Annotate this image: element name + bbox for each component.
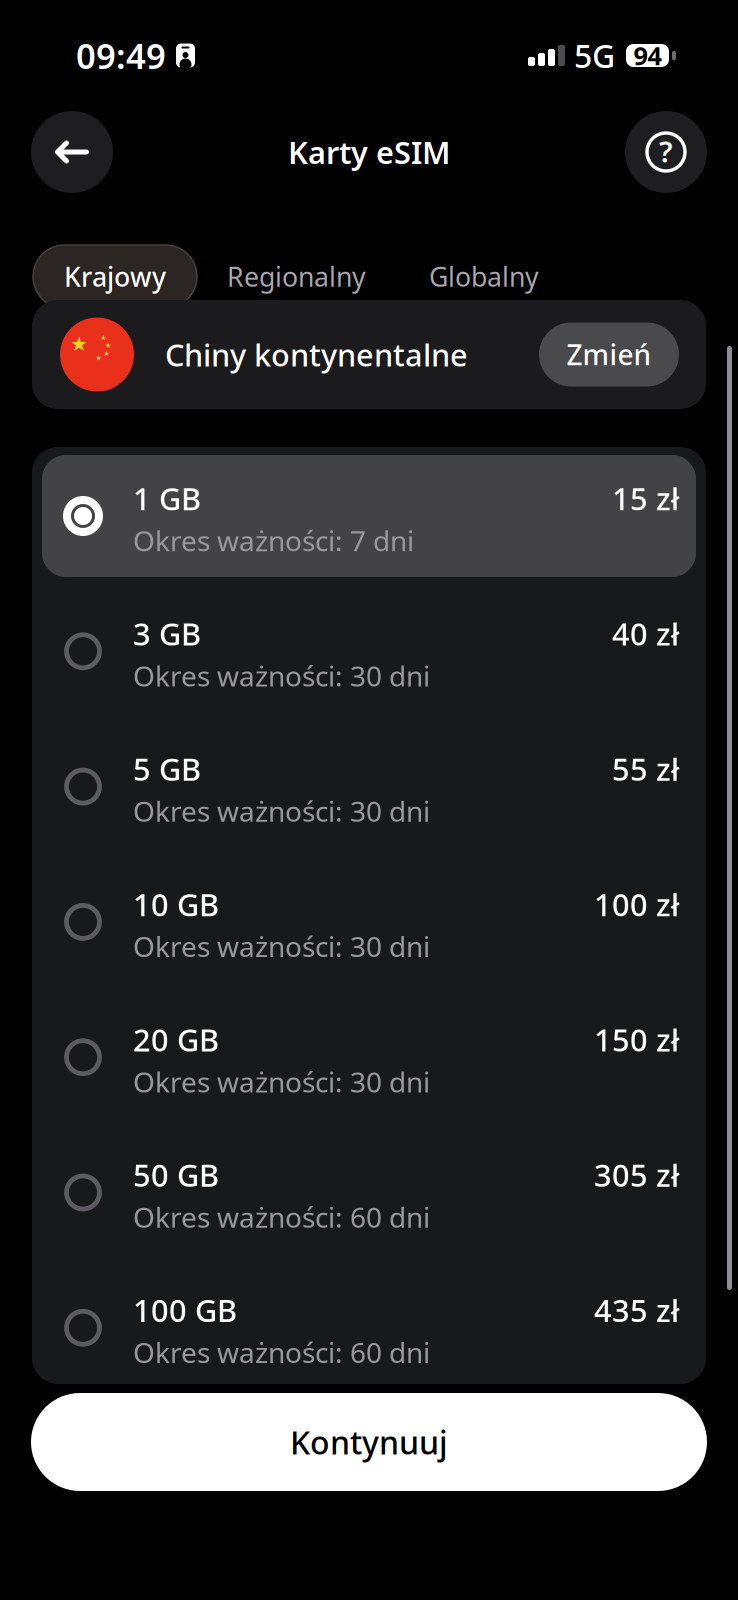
- staticText: Krajowy: [64, 259, 166, 294]
- button[interactable]: 50 GB: [32, 1131, 706, 1253]
- button[interactable]: 100 GB: [32, 1267, 706, 1389]
- staticText: Okres ważności: 30 dni: [133, 657, 430, 694]
- staticText: 435 zł: [594, 1290, 679, 1330]
- button[interactable]: 1 GB: [32, 455, 706, 577]
- button[interactable]: Zmień: [539, 322, 679, 386]
- staticText: 94: [633, 39, 661, 72]
- staticText: 3 GB: [133, 613, 201, 654]
- staticText: Kontynuuj: [290, 1421, 448, 1463]
- staticText: Okres ważności: 30 dni: [133, 928, 430, 965]
- staticText: 50 GB: [133, 1154, 219, 1195]
- staticText: 20 GB: [133, 1019, 219, 1060]
- staticText: 1 GB: [133, 478, 201, 519]
- button[interactable]: Wstecz: [31, 111, 113, 193]
- button[interactable]: 3 GB: [32, 590, 706, 712]
- button[interactable]: Globalny: [396, 245, 572, 308]
- button[interactable]: 20 GB: [32, 996, 706, 1118]
- button[interactable]: Pomoc: [625, 111, 707, 193]
- staticText: 305 zł: [594, 1154, 679, 1195]
- staticText: Okres ważności: 30 dni: [133, 792, 430, 829]
- staticText: 5 GB: [133, 749, 201, 789]
- button[interactable]: Regionalny: [197, 245, 396, 308]
- staticText: Okres ważności: 7 dni: [133, 522, 414, 559]
- staticText: 09:49: [76, 32, 166, 78]
- staticText: 40 zł: [612, 613, 679, 654]
- staticText: 10 GB: [133, 884, 219, 925]
- staticText: 150 zł: [594, 1019, 679, 1060]
- button[interactable]: 5 GB: [32, 726, 706, 848]
- staticText: 15 zł: [612, 478, 679, 519]
- staticText: 5G: [574, 34, 615, 77]
- staticText: Regionalny: [227, 259, 366, 294]
- staticText: Okres ważności: 60 dni: [133, 1333, 430, 1371]
- staticText: 100 GB: [133, 1290, 237, 1330]
- staticText: 100 zł: [594, 884, 679, 925]
- button[interactable]: 10 GB: [32, 861, 706, 983]
- staticText: 55 zł: [612, 749, 679, 789]
- staticText: Karty eSIM: [288, 132, 450, 172]
- staticText: Okres ważności: 30 dni: [133, 1063, 430, 1100]
- staticText: Globalny: [429, 259, 539, 294]
- staticText: ?: [659, 131, 673, 170]
- staticText: Chiny kontynentalne: [165, 334, 468, 375]
- staticText: Okres ważności: 60 dni: [133, 1198, 430, 1235]
- staticText: Zmień: [566, 336, 651, 373]
- button[interactable]: Krajowy: [33, 245, 197, 308]
- button[interactable]: Kontynuuj: [31, 1393, 707, 1491]
